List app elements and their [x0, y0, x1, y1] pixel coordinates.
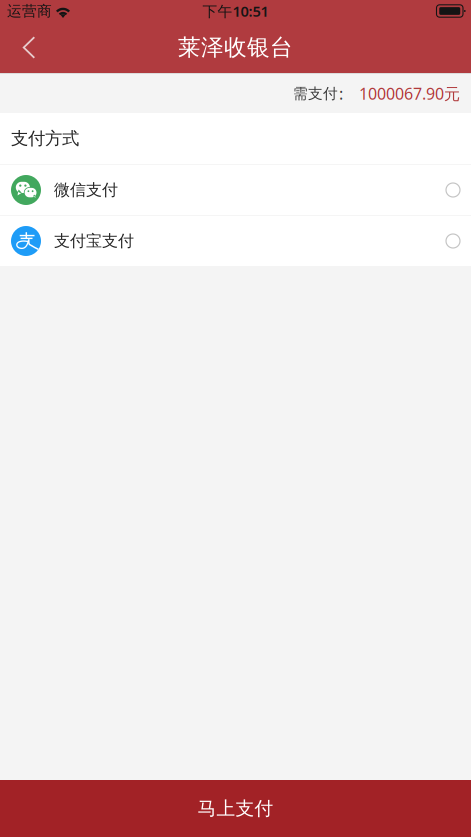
staticText: 支付方式 — [11, 128, 79, 149]
button[interactable]: 微信支付 — [0, 165, 471, 215]
button[interactable]: 支付宝支付 — [0, 216, 471, 266]
staticText: 马上支付 — [197, 797, 273, 820]
staticText: 运营商 — [7, 2, 52, 20]
staticText: 需支付 — [293, 84, 338, 102]
staticText: : — [339, 83, 343, 104]
button[interactable]: Back — [6, 23, 52, 71]
staticText: 下午10:51 — [202, 1, 268, 21]
staticText: 1000067.90元 — [359, 83, 460, 104]
staticText: 支付宝支付 — [54, 231, 134, 251]
staticText: 莱泽收银台 — [178, 34, 293, 61]
button[interactable]: 马上支付 — [0, 780, 471, 837]
staticText: 微信支付 — [54, 180, 118, 200]
